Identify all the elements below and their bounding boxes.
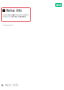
- staticText: LIVE: [56, 3, 61, 7]
- staticText: Supporting detail line one goes right he…: [2, 14, 29, 16]
- button[interactable]: Live: [55, 3, 62, 7]
- staticText: and a second line of the detail text fol…: [2, 16, 26, 18]
- staticText: more info: [5, 83, 19, 87]
- staticText: updated just now: [2, 24, 13, 26]
- button[interactable]: Notice title: [1, 7, 31, 22]
- staticText: ›: [29, 9, 30, 12]
- staticText: Notice title: [6, 9, 22, 12]
- button[interactable]: more info: [1, 83, 19, 87]
